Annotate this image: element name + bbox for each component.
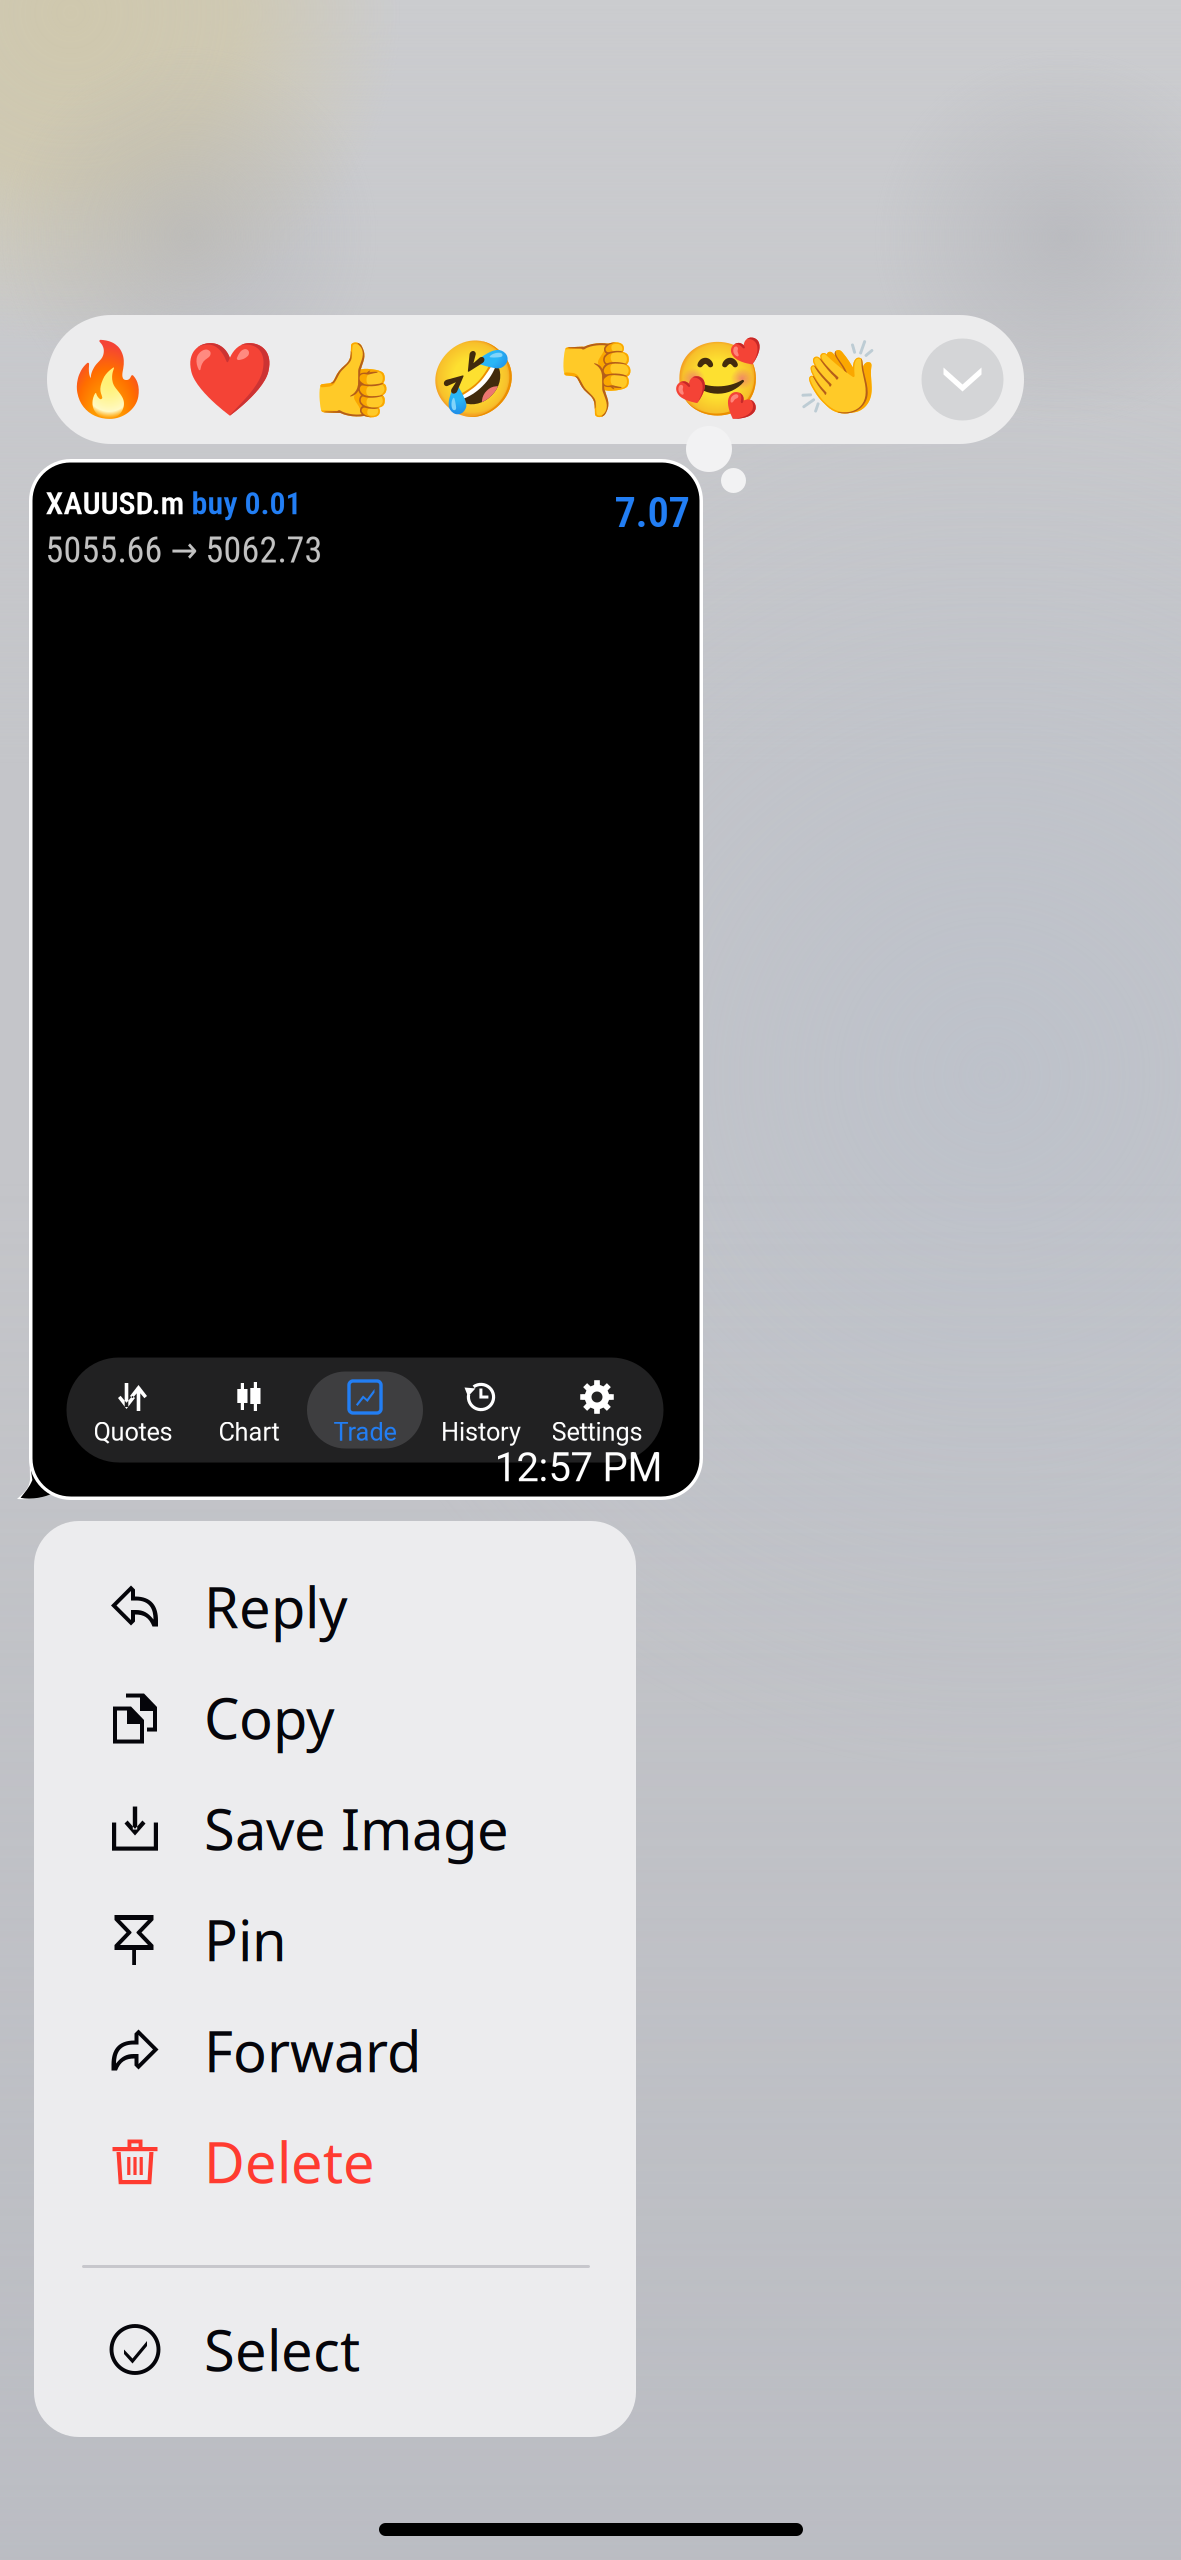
button[interactable]: React 🥰: [657, 315, 779, 444]
staticText: 🤣: [429, 338, 519, 421]
staticText: 5055.66 → 5062.73: [45, 529, 322, 571]
button[interactable]: More reactions: [901, 315, 1024, 444]
staticText: 🔥: [63, 338, 153, 421]
staticText: Settings: [551, 1417, 642, 1447]
button[interactable]: React 🔥: [47, 315, 169, 444]
button[interactable]: Forward: [34, 1995, 636, 2106]
staticText: Chart: [218, 1417, 279, 1447]
button[interactable]: React 🤣: [413, 315, 535, 444]
staticText: 👎: [551, 338, 641, 421]
button[interactable]: React ❤️: [169, 315, 291, 444]
button[interactable]: React 👎: [535, 315, 657, 444]
button[interactable]: React 👏: [779, 315, 901, 444]
button[interactable]: Chart: [191, 1371, 307, 1448]
staticText: Reply: [204, 1569, 348, 1644]
staticText: History: [441, 1417, 521, 1447]
button[interactable]: History: [423, 1371, 539, 1448]
staticText: ❤️: [185, 338, 275, 421]
staticText: buy 0.01: [184, 484, 301, 522]
button[interactable]: React 👍: [291, 315, 413, 444]
button[interactable]: Reply: [34, 1551, 636, 1662]
staticText: 👏: [795, 338, 885, 421]
staticText: 🥰: [673, 338, 763, 421]
staticText: Forward: [204, 2013, 421, 2088]
staticText: Save Image: [204, 1791, 509, 1866]
button[interactable]: Quotes: [75, 1371, 191, 1448]
button[interactable]: Pin: [34, 1884, 636, 1995]
button[interactable]: Delete: [34, 2106, 636, 2217]
button[interactable]: Trade: [307, 1371, 423, 1448]
button[interactable]: Settings: [539, 1371, 655, 1448]
button[interactable]: Save Image: [34, 1773, 636, 1884]
staticText: 7.07: [614, 487, 689, 537]
staticText: Select: [204, 2312, 360, 2387]
staticText: 👍: [307, 338, 397, 421]
staticText: Pin: [204, 1902, 287, 1977]
button[interactable]: Select: [34, 2294, 636, 2405]
staticText: XAUUSD.m: [45, 484, 184, 522]
staticText: Trade: [333, 1417, 396, 1447]
staticText: Copy: [204, 1680, 335, 1755]
staticText: Delete: [204, 2124, 375, 2199]
staticText: 12:57 PM: [494, 1444, 662, 1491]
button[interactable]: Copy: [34, 1662, 636, 1773]
staticText: Quotes: [93, 1417, 172, 1447]
